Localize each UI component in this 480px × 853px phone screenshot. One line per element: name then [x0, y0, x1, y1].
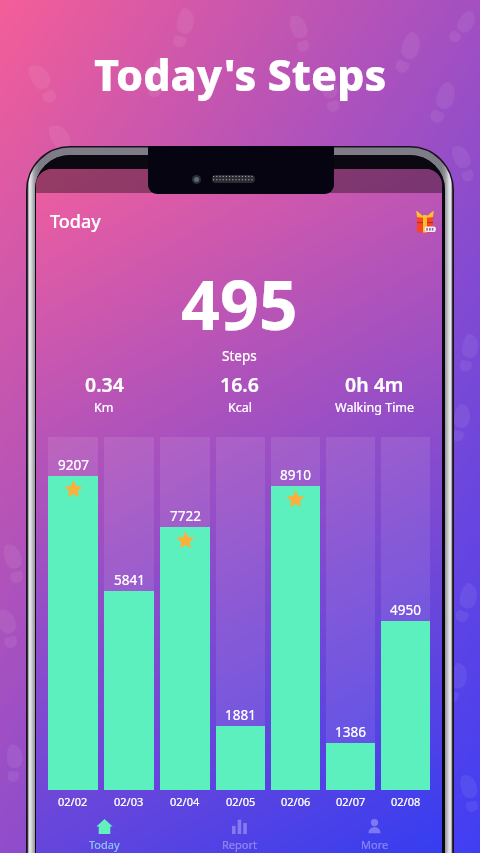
- staticText: Kcal: [228, 399, 252, 416]
- staticText: 5841: [114, 571, 145, 589]
- button[interactable]: 9207: [48, 437, 98, 790]
- staticText: 1881: [225, 706, 256, 724]
- button[interactable]: 7722: [160, 437, 210, 790]
- button[interactable]: Today: [36, 813, 172, 852]
- staticText: 1386: [335, 723, 366, 741]
- staticText: Km: [94, 399, 114, 416]
- staticText: 02/04: [170, 794, 200, 809]
- button[interactable]: Gift reward, advertisement: [412, 208, 438, 234]
- staticText: Steps: [222, 347, 257, 365]
- button[interactable]: 1881: [216, 437, 265, 790]
- button[interactable]: Report: [172, 813, 307, 852]
- staticText: 02/05: [226, 794, 256, 809]
- staticText: 02/08: [391, 794, 421, 809]
- staticText: 495: [181, 257, 298, 347]
- staticText: 16.6: [220, 371, 259, 398]
- staticText: 7722: [170, 507, 201, 525]
- staticText: 02/02: [58, 794, 88, 809]
- button[interactable]: 5841: [104, 437, 154, 790]
- staticText: 4950: [390, 601, 421, 619]
- staticText: 8910: [280, 466, 311, 484]
- button[interactable]: 1386: [326, 437, 375, 790]
- button[interactable]: 8910: [271, 437, 320, 790]
- staticText: Today's Steps: [94, 45, 387, 104]
- staticText: Report: [222, 837, 257, 852]
- button[interactable]: 4950: [381, 437, 430, 790]
- staticText: 0.34: [85, 371, 124, 398]
- staticText: 9207: [58, 456, 89, 474]
- staticText: 02/06: [281, 794, 311, 809]
- staticText: Today: [50, 209, 101, 234]
- staticText: Walking Time: [335, 399, 415, 416]
- button[interactable]: More: [307, 813, 442, 852]
- staticText: 02/03: [114, 794, 144, 809]
- staticText: Today: [89, 837, 120, 852]
- staticText: More: [361, 837, 389, 852]
- staticText: 02/07: [336, 794, 366, 809]
- staticText: 0h 4m: [345, 371, 404, 398]
